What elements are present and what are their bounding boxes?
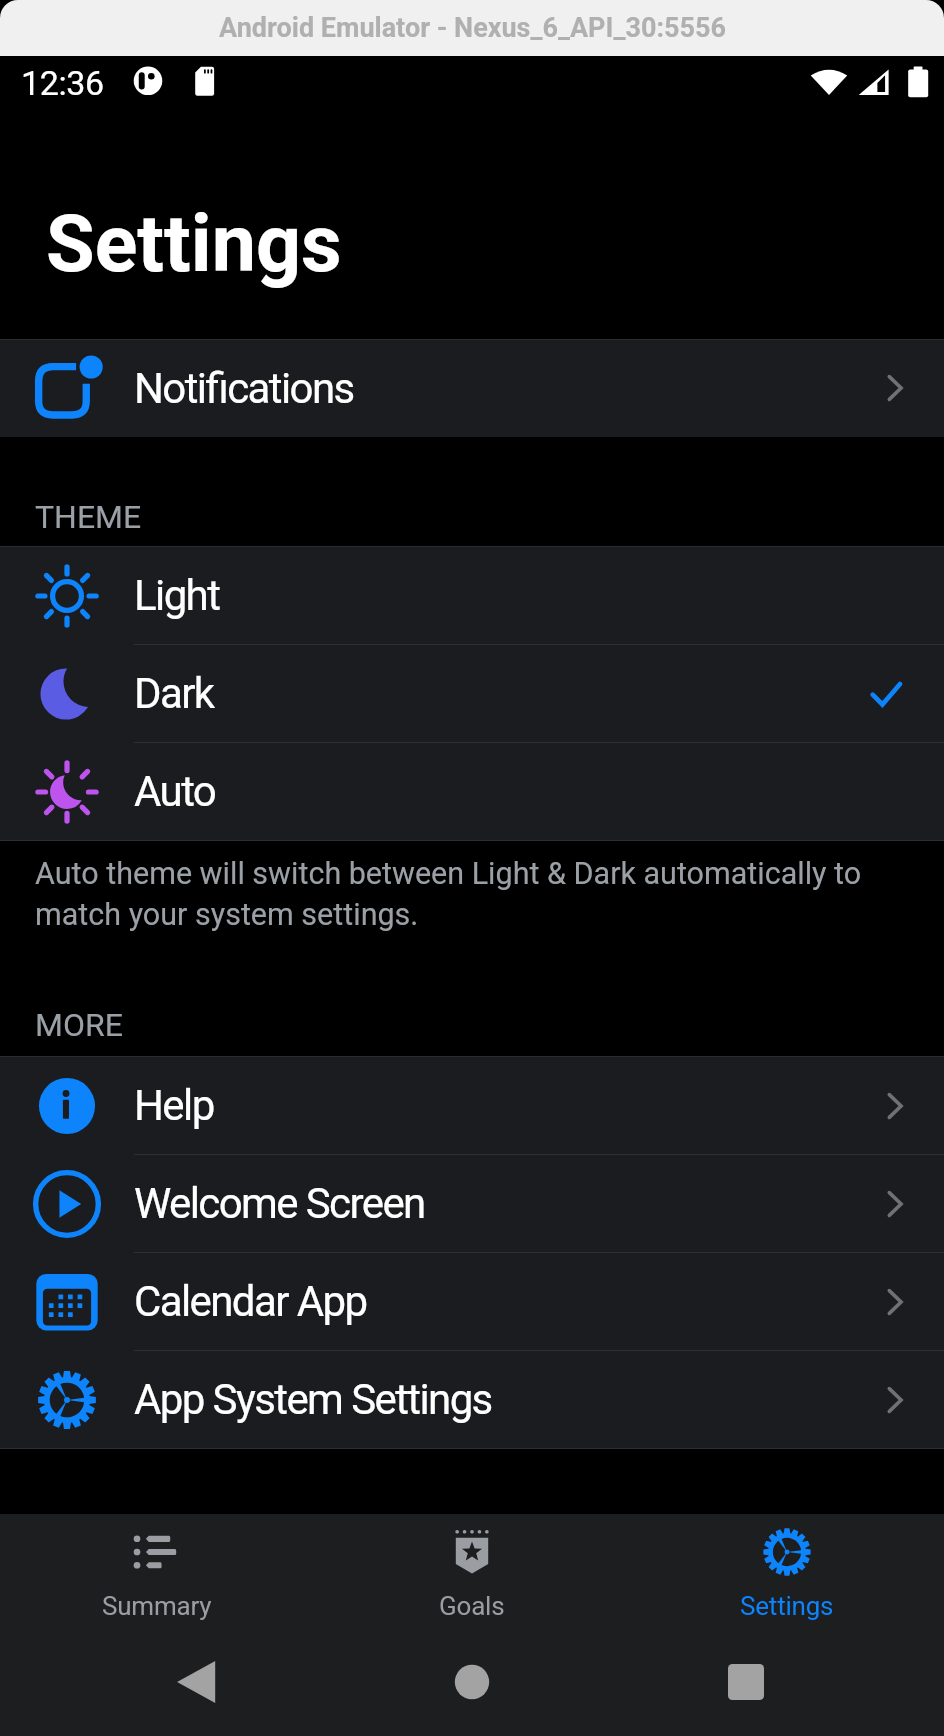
button[interactable]: Back xyxy=(157,1642,237,1722)
staticText: App System Settings xyxy=(134,1375,492,1424)
staticText: Dark xyxy=(134,669,214,718)
staticText: Summary xyxy=(102,1591,212,1621)
staticText: MORE xyxy=(35,1006,123,1044)
staticText: Auto xyxy=(134,767,216,816)
staticText: Auto theme will switch between Light & D… xyxy=(35,856,915,933)
staticText: Calendar App xyxy=(134,1277,367,1326)
staticText: 12:36 xyxy=(21,63,104,103)
staticText: Help xyxy=(134,1081,214,1130)
button[interactable]: Summary xyxy=(0,1514,314,1631)
staticText: Settings xyxy=(46,198,342,291)
button[interactable]: Home xyxy=(432,1642,512,1722)
button[interactable]: Calendar App xyxy=(0,1253,944,1350)
button[interactable]: Auto xyxy=(0,743,944,840)
button[interactable]: Settings xyxy=(629,1514,944,1631)
staticText: Light xyxy=(134,571,220,620)
staticText: THEME xyxy=(35,498,142,536)
staticText: Welcome Screen xyxy=(134,1179,425,1228)
staticText: Notifications xyxy=(134,364,354,413)
staticText: Goals xyxy=(439,1591,505,1621)
button[interactable]: Help xyxy=(0,1057,944,1154)
button[interactable]: Recents xyxy=(706,1642,786,1722)
button[interactable]: App System Settings xyxy=(0,1351,944,1448)
button[interactable]: Goals xyxy=(314,1514,629,1631)
staticText: Settings xyxy=(740,1591,834,1621)
button[interactable]: Notifications xyxy=(0,339,944,437)
button[interactable]: Light xyxy=(0,547,944,644)
staticText: Android Emulator - Nexus_6_API_30:5556 xyxy=(219,12,726,44)
button[interactable]: Welcome Screen xyxy=(0,1155,944,1252)
button[interactable]: Dark xyxy=(0,645,944,742)
